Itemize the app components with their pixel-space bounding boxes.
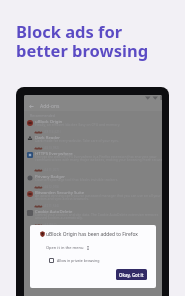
button[interactable]: Back [29, 101, 162, 112]
staticText: Add-ons [40, 103, 60, 110]
staticText: Recommended [30, 113, 55, 118]
other: Back [29, 104, 34, 109]
staticText: Counterespionage tool that blocks invisi… [35, 177, 119, 182]
staticText: Dark Reader [35, 134, 61, 140]
staticText: Allow in private browsing [57, 258, 100, 263]
staticText: uBlock Origin has been added to Firefox [46, 231, 138, 238]
staticText: HTTPS Everywhere [35, 150, 73, 156]
button[interactable]: Cookie AutoDelete [24, 209, 162, 228]
staticText: uBlock Origin [35, 118, 63, 124]
staticText: Dark mode for every website. Take care o… [35, 138, 119, 143]
button[interactable]: Privacy Badger [24, 174, 162, 190]
staticText: Okay, Got it [119, 272, 144, 278]
button[interactable]: Bitwarden Security Suite [24, 190, 162, 209]
button[interactable]: Dark Reader [24, 135, 162, 151]
staticText: Block ads for better browsing [16, 20, 149, 62]
staticText: Finally, an efficient blocker. Easy on C… [35, 122, 121, 127]
button[interactable]: Okay, Got it [116, 269, 147, 280]
button[interactable]: HTTPS Everywhere [24, 151, 162, 174]
staticText: Open it in the menu [46, 245, 84, 250]
staticText: Encrypt the web! HTTPS Everywhere is a F… [35, 154, 162, 162]
button[interactable]: Allow in private browsing [49, 258, 100, 263]
staticText: Control your cookies and site data. The … [35, 212, 162, 220]
button[interactable]: uBlock Origin [24, 119, 162, 135]
staticText: Privacy Badger [35, 173, 66, 179]
staticText: Bitwarden Security Suite [35, 189, 85, 195]
staticText: Cookie AutoDelete [35, 208, 73, 214]
staticText: An award winning open source password ma… [35, 193, 162, 201]
staticText: 4.2 (842) [44, 223, 57, 227]
